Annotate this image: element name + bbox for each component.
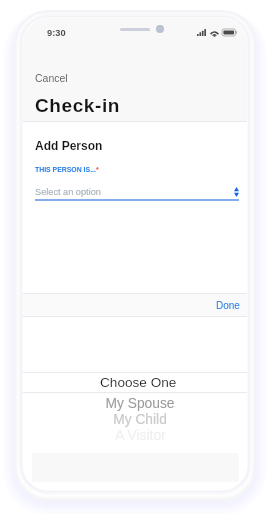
- button[interactable]: Select an option: [35, 185, 239, 207]
- button[interactable]: My Child: [23, 411, 247, 427]
- staticText: 9:30: [47, 28, 66, 38]
- staticText: Choose One: [100, 375, 177, 390]
- button[interactable]: Done: [209, 293, 247, 317]
- staticText: Check-in: [35, 95, 121, 116]
- staticText: My Spouse: [105, 396, 175, 411]
- staticText: Add Person: [35, 139, 103, 152]
- button[interactable]: Cancel: [28, 68, 76, 87]
- staticText: Done: [216, 300, 240, 311]
- staticText: A Visitor: [115, 428, 166, 443]
- staticText: *: [96, 166, 99, 174]
- button[interactable]: My Spouse: [23, 395, 247, 411]
- staticText: Cancel: [35, 72, 68, 84]
- staticText: THIS PERSON IS...: [35, 166, 96, 174]
- staticText: Select an option: [35, 187, 101, 197]
- staticText: My Child: [113, 412, 167, 427]
- button[interactable]: A Visitor: [23, 427, 247, 443]
